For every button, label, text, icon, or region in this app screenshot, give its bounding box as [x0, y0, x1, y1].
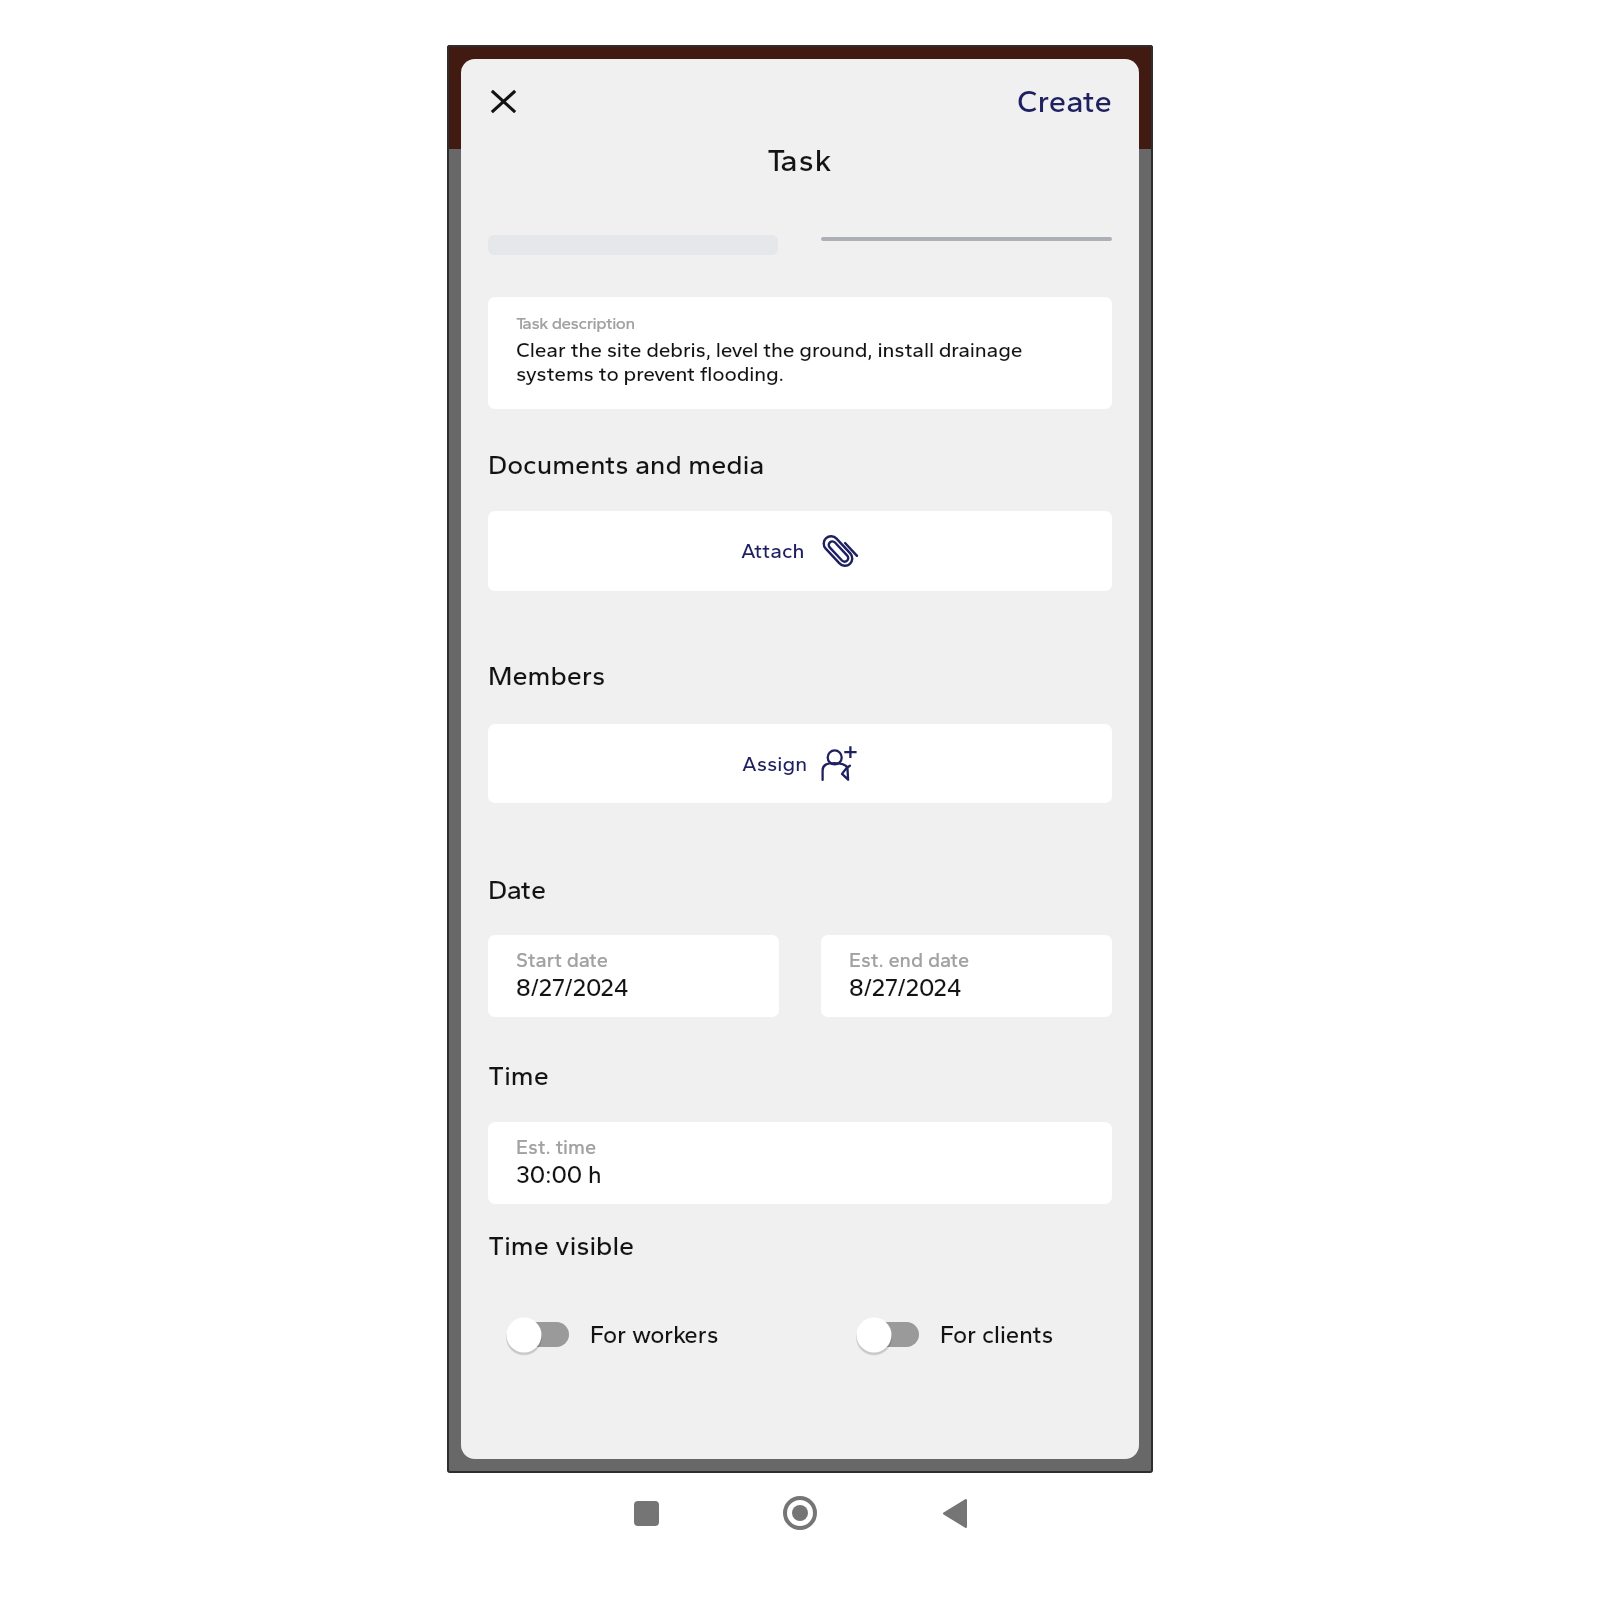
button[interactable]: For clients — [842, 1304, 1074, 1364]
button[interactable]: For workers — [492, 1304, 724, 1364]
button[interactable]: Task description — [488, 297, 1112, 409]
button[interactable]: Attach — [488, 511, 1112, 591]
staticText: 8/27/2024 — [849, 973, 962, 1002]
button[interactable]: Create — [1004, 73, 1126, 129]
staticText: Est. time — [516, 1135, 597, 1159]
button[interactable]: Back — [934, 1492, 976, 1534]
button[interactable]: Assign — [488, 724, 1112, 803]
button[interactable]: Recent apps — [625, 1492, 667, 1534]
staticText: Task description — [516, 313, 635, 333]
staticText: Start date — [516, 948, 608, 972]
staticText: For clients — [940, 1320, 1054, 1349]
staticText: Clear the site debris, level the ground,… — [516, 337, 1038, 386]
staticText: Members — [488, 659, 606, 691]
button[interactable]: Start date — [488, 935, 779, 1017]
button[interactable]: Close — [478, 77, 526, 125]
staticText: 30:00 h — [516, 1160, 602, 1189]
button[interactable]: Est. end date — [821, 935, 1112, 1017]
staticText: Time — [488, 1059, 549, 1091]
staticText: Time visible — [488, 1229, 635, 1261]
staticText: Create — [1017, 83, 1113, 120]
staticText: Attach — [741, 538, 805, 563]
staticText: Date — [488, 873, 547, 905]
staticText: For workers — [590, 1320, 719, 1349]
staticText: Documents and media — [488, 448, 765, 480]
button[interactable]: Home — [779, 1492, 821, 1534]
staticText: Task — [767, 142, 833, 179]
staticText: Assign — [742, 751, 808, 776]
button[interactable]: Est. time — [488, 1122, 1112, 1204]
staticText: Est. end date — [849, 948, 970, 972]
staticText: 8/27/2024 — [516, 973, 629, 1002]
